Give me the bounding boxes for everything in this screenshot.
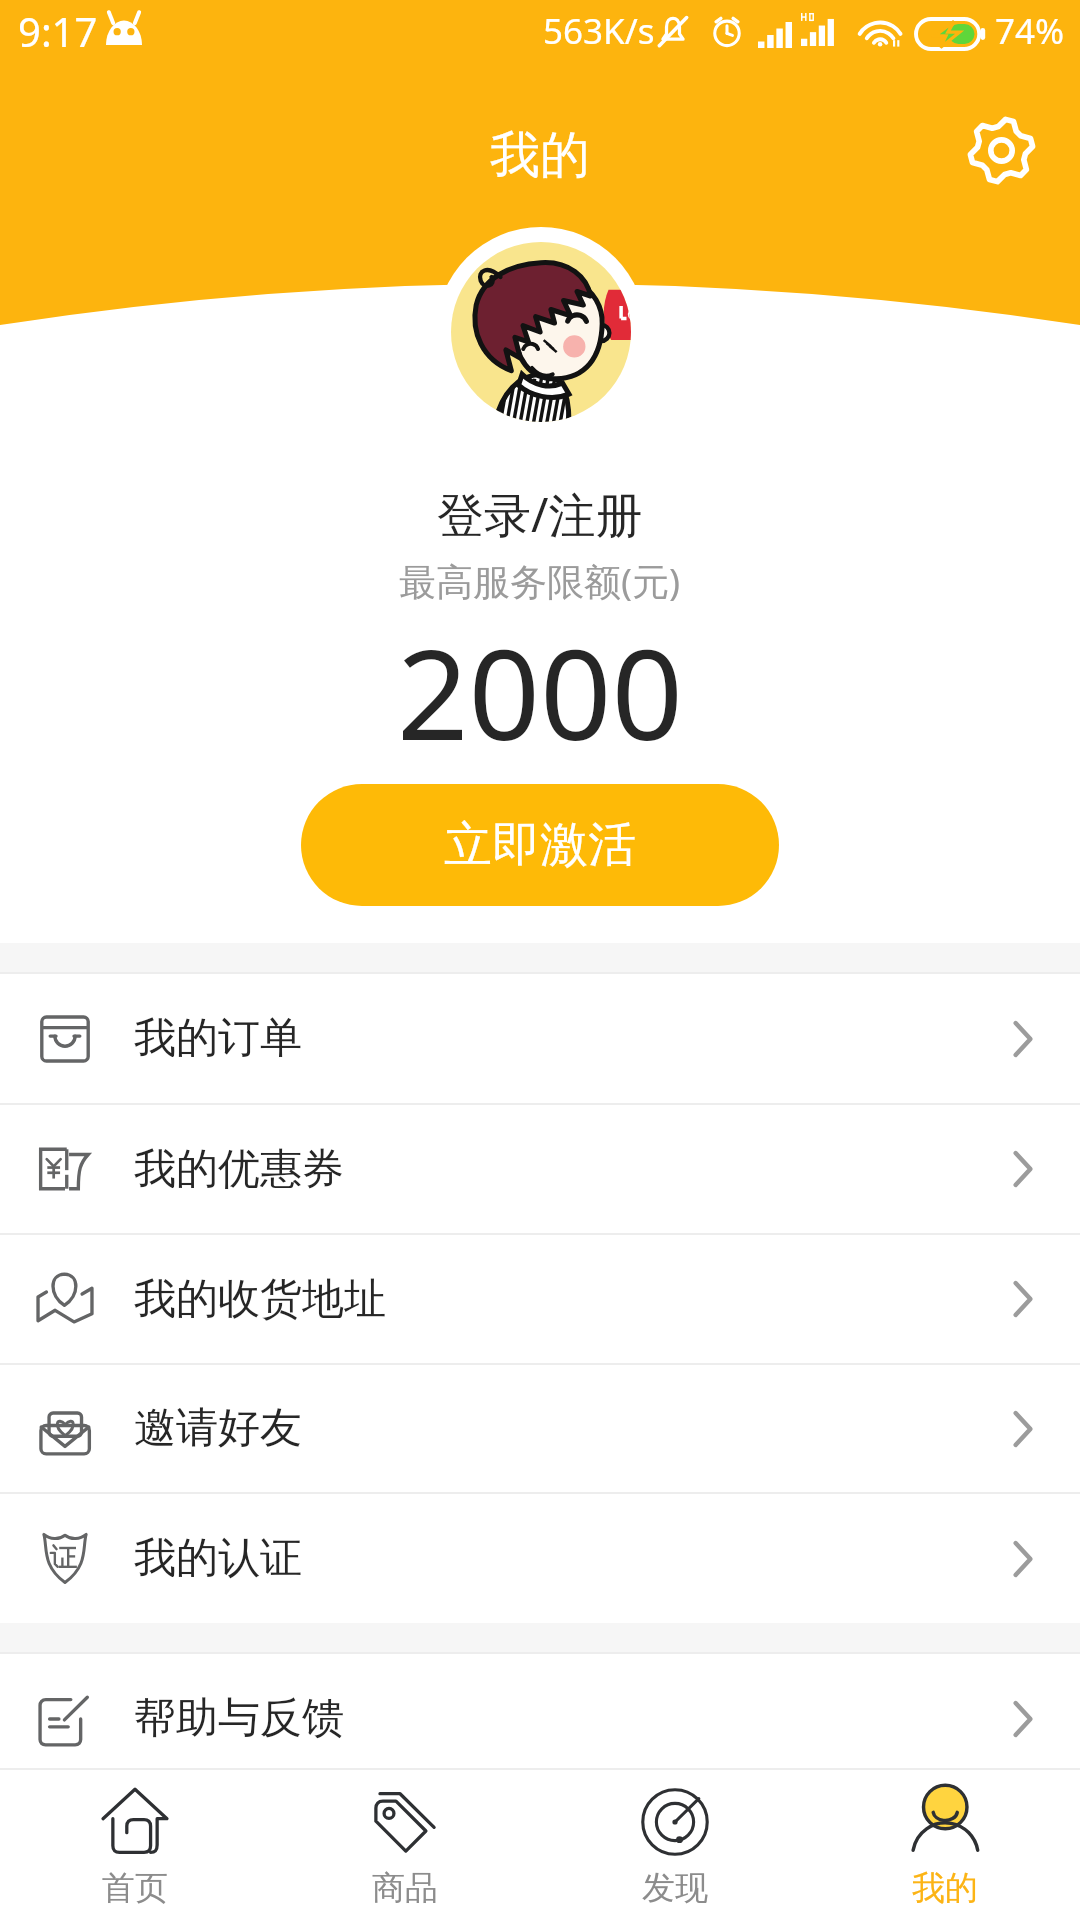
staticText: 我的认证: [134, 1532, 302, 1585]
staticText: 我的: [490, 124, 590, 187]
staticText: 9:17: [18, 4, 98, 58]
staticText: 我的收货地址: [134, 1273, 386, 1326]
staticText: 74%: [995, 7, 1065, 55]
button[interactable]: 登录/注册: [437, 482, 643, 546]
staticText: 最高服务限额(元): [399, 555, 681, 606]
staticText: 我的: [912, 1867, 978, 1909]
button[interactable]: 立即激活: [301, 784, 779, 906]
button[interactable]: 帮助与反馈: [0, 1654, 1080, 1783]
staticText: 发现: [642, 1867, 708, 1909]
button[interactable]: 首页: [0, 1770, 270, 1920]
staticText: 帮助与反馈: [134, 1692, 344, 1745]
staticText: 邀请好友: [134, 1402, 302, 1455]
staticText: 563K/s: [543, 7, 655, 55]
staticText: 我的优惠券: [134, 1143, 344, 1196]
button[interactable]: 我的订单: [0, 974, 1080, 1103]
button[interactable]: 邀请好友: [0, 1365, 1080, 1492]
staticText: 立即激活: [444, 815, 636, 875]
staticText: 首页: [102, 1867, 168, 1909]
staticText: 我的订单: [134, 1012, 302, 1065]
button[interactable]: 我的收货地址: [0, 1235, 1080, 1363]
button[interactable]: 商品: [270, 1770, 540, 1920]
staticText: 商品: [372, 1867, 438, 1909]
button[interactable]: 发现: [540, 1770, 810, 1920]
button[interactable]: 我的: [810, 1770, 1080, 1920]
button[interactable]: Settings: [959, 108, 1043, 192]
button[interactable]: 我的认证: [0, 1494, 1080, 1623]
button[interactable]: Profile avatar: [436, 227, 646, 437]
button[interactable]: 我的优惠券: [0, 1105, 1080, 1233]
staticText: 2000: [397, 606, 683, 776]
